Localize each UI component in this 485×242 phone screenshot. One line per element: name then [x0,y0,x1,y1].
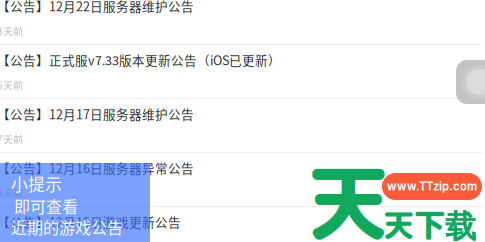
staticText: 小提示 [11,171,62,195]
button[interactable]: 【公告】12月16日服务器异常公告 [0,153,482,206]
button[interactable]: 【公告】12月15日游戏更新公告 [0,207,482,242]
button[interactable]: 【公告】12月22日服务器维护公告 [0,0,482,44]
staticText: 5天前 [0,78,23,92]
button[interactable]: 【公告】正式服v7.33版本更新公告（iOS已更新） [0,45,482,98]
staticText: 7天前 [0,132,23,146]
staticText: 8天前 [0,186,23,200]
staticText: 【公告】12月17日服务器维护公告 [0,105,194,123]
staticText: 天 [307,145,390,242]
staticText: 【公告】12月22日服务器维护公告 [0,0,194,15]
staticText: 天下载 [383,203,476,242]
staticText: 【公告】正式服v7.33版本更新公告（iOS已更新） [0,51,281,69]
staticText: 【公告】12月16日服务器异常公告 [0,159,194,177]
staticText: 近期的游戏公告 [11,215,123,238]
staticText: 【公告】12月15日游戏更新公告 [0,213,181,231]
button[interactable]: 【公告】12月17日服务器维护公告 [0,99,482,152]
staticText: 3天前 [0,24,23,38]
staticText: www.TTzip.com [387,180,477,193]
staticText: 即可查看 [14,194,78,217]
